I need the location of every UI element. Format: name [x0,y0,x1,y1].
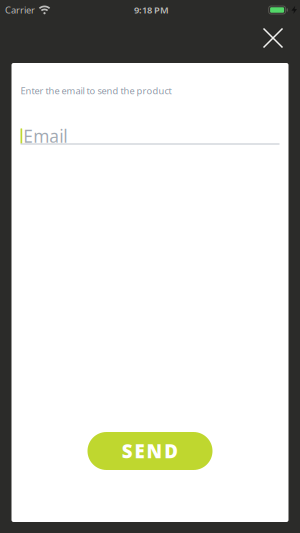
staticText: 9:18 PM [134,4,169,16]
button[interactable]: Email [20,128,279,144]
button[interactable]: Close [263,28,283,48]
button[interactable]: SEND [87,432,212,470]
staticText: SEND [122,439,178,463]
staticText: Enter the email to send the product [20,85,171,97]
staticText: Carrier [5,4,35,16]
staticText: Email [23,124,67,147]
